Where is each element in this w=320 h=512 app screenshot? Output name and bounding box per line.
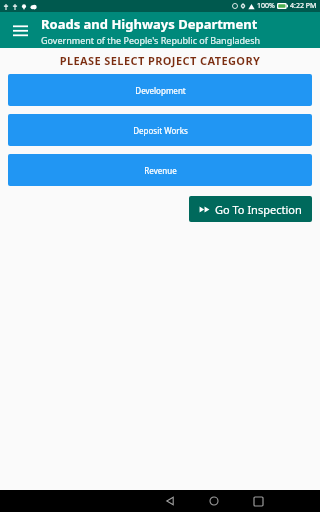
button[interactable]: Revenue <box>8 154 312 186</box>
button[interactable]: Deposit Works <box>8 114 312 146</box>
button[interactable]: Development <box>8 74 312 106</box>
staticText: Deposit Works <box>133 125 188 136</box>
button[interactable]: Back <box>160 491 180 511</box>
staticText: 100% <box>257 1 275 11</box>
staticText: Roads and Highways Department <box>41 15 258 33</box>
button[interactable]: Go To Inspection <box>189 196 312 222</box>
button[interactable]: Recent apps <box>248 491 268 511</box>
staticText: PLEASE SELECT PROJECT CATEGORY <box>0 53 320 68</box>
staticText: Government of the People's Republic of B… <box>41 34 261 46</box>
staticText: 4:22 PM <box>290 1 317 11</box>
staticText: Go To Inspection <box>215 202 302 217</box>
staticText: Development <box>135 85 186 96</box>
button[interactable]: Open navigation menu <box>6 16 34 44</box>
staticText: Revenue <box>144 165 177 176</box>
button[interactable]: Home <box>204 491 224 511</box>
